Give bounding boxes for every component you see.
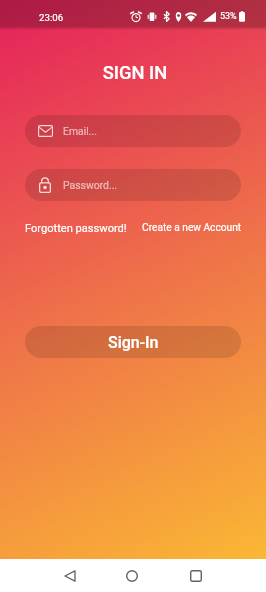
button[interactable]: Forgotten password! (25, 222, 127, 235)
staticText: Sign-In (108, 333, 159, 352)
button[interactable]: Back (53, 559, 85, 592)
staticText: SIGN IN (2, 62, 266, 83)
button[interactable]: Email... (25, 115, 241, 147)
staticText: 23:06 (39, 12, 64, 23)
staticText: Email... (63, 125, 97, 137)
staticText: Password... (63, 179, 118, 191)
button[interactable]: Home (116, 559, 148, 592)
button[interactable]: Create a new Account (142, 222, 242, 234)
staticText: 53% (220, 11, 237, 22)
button[interactable]: Recent apps (180, 559, 212, 592)
button[interactable]: Sign-In (25, 326, 241, 358)
button[interactable]: Password... (25, 169, 241, 201)
